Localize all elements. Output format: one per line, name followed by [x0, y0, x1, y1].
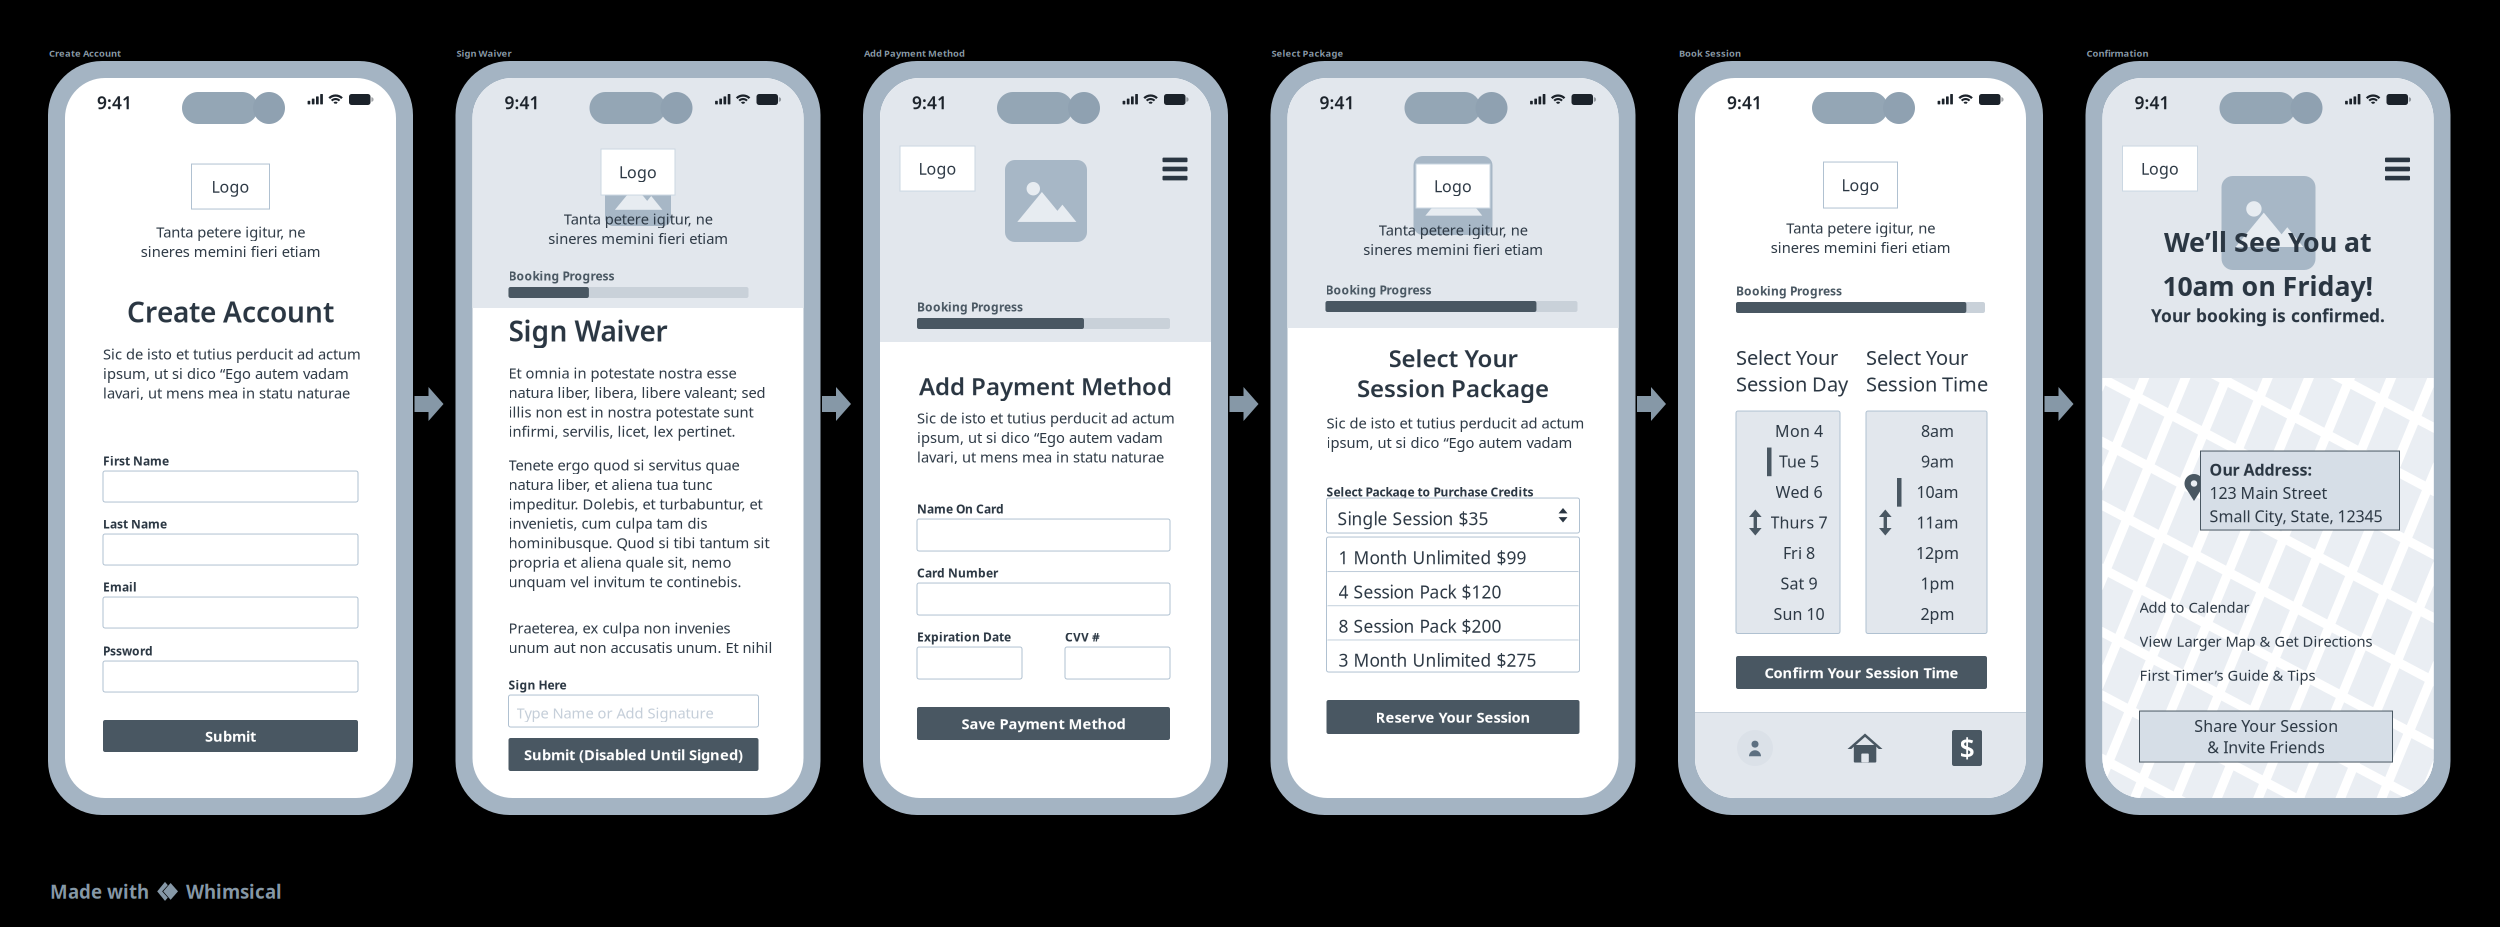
staticText: Add to Calendar [2139, 597, 2249, 617]
button[interactable]: 3 Month Unlimited $275 [1327, 641, 1578, 674]
staticText: 1 Month Unlimited $99 [1338, 546, 1526, 569]
button[interactable]: Share Your Session & Invite Friends [2139, 711, 2392, 762]
button[interactable] [917, 519, 1170, 551]
staticText: 8am [1921, 420, 1954, 441]
staticText: Booking Progress [1325, 282, 1431, 298]
staticText: 8 Session Pack $200 [1338, 614, 1501, 637]
staticText: Sat 9 [1780, 573, 1817, 594]
button[interactable]: Save Payment Method [917, 707, 1170, 740]
staticText: Logo [2141, 158, 2179, 179]
staticText: 123 Main Street [2209, 482, 2327, 503]
button[interactable]: 8 Session Pack $200 [1327, 606, 1578, 640]
staticText: Made with [50, 879, 149, 904]
staticText: 3 Month Unlimited $275 [1338, 649, 1536, 672]
button[interactable]: Menu [1154, 148, 1196, 190]
button[interactable]: Submit (Disabled Until Signed) [508, 738, 758, 771]
staticText: Single Session $35 [1337, 507, 1488, 530]
button[interactable]: Add to Calendar [2139, 596, 2401, 618]
staticText: Our Address: [2209, 459, 2311, 480]
button[interactable]: Confirm Your Session Time [1736, 656, 1987, 689]
staticText: Create Account [49, 47, 121, 59]
button[interactable]: Submit [103, 720, 358, 752]
staticText: 9:41 [912, 91, 947, 114]
staticText: 9:41 [2134, 91, 2169, 114]
staticText: Card Number [917, 565, 998, 581]
staticText: 9:41 [504, 91, 539, 114]
button[interactable]: View Larger Map & Get Directions [2139, 630, 2401, 652]
button[interactable]: Reserve Your Session [1326, 700, 1579, 734]
staticText: Sic de isto et tutius perducit ad actum … [917, 408, 1175, 466]
staticText: Thurs 7 [1770, 512, 1827, 533]
staticText: Select Package to Purchase Credits [1326, 484, 1533, 500]
staticText: Small City, State, 12345 [2209, 505, 2382, 527]
staticText: Tue 5 [1779, 451, 1819, 472]
staticText: Sign Waiver [508, 312, 667, 349]
staticText: First Name [103, 453, 169, 469]
staticText: Session Package [1357, 372, 1549, 404]
button[interactable] [1065, 647, 1170, 679]
staticText: Confirmation [2086, 47, 2148, 59]
staticText: Add Payment Method [919, 370, 1172, 402]
staticText: Fri 8 [1783, 542, 1815, 563]
staticText: Book Session [1679, 47, 1741, 59]
staticText: Sign Here [508, 677, 566, 693]
staticText: Tanta petere igitur, ne sineres memini f… [1363, 220, 1543, 259]
staticText: Logo [619, 161, 657, 183]
button[interactable]: Profile [1729, 722, 1781, 774]
staticText: 11am [1916, 512, 1958, 533]
button[interactable] [917, 647, 1022, 679]
staticText: Submit [205, 726, 256, 746]
staticText: Whimsical [186, 879, 282, 904]
button[interactable]: Payments [1941, 722, 1993, 774]
staticText: Email [103, 579, 137, 595]
staticText: Praeterea, ex culpa non invenies unum au… [508, 618, 772, 657]
staticText: Et omnia in potestate nostra esse natura… [508, 363, 765, 441]
staticText: Booking Progress [1736, 283, 1842, 299]
staticText: Tenete ergo quod si servitus quae natura… [508, 455, 769, 591]
staticText: Logo [1434, 175, 1472, 197]
button[interactable]: 1 Month Unlimited $99 [1327, 538, 1578, 571]
staticText: Select Your Session Time [1866, 344, 1988, 397]
staticText: 9am [1921, 451, 1954, 472]
button[interactable]: Single Session $35 [1326, 498, 1579, 533]
staticText: Sic de isto et tutius perducit ad actum … [1326, 413, 1584, 452]
staticText: 9:41 [1727, 91, 1762, 114]
staticText: 4 Session Pack $120 [1338, 580, 1501, 603]
staticText: Wed 6 [1775, 481, 1822, 502]
staticText: Select Your Session Day [1736, 344, 1848, 397]
staticText: Logo [1841, 174, 1879, 196]
button[interactable] [917, 583, 1170, 615]
staticText: 10am [1916, 481, 1958, 502]
staticText: Sun 10 [1773, 603, 1824, 624]
button[interactable]: Type Name or Add Signature [508, 695, 758, 727]
staticText: $ [1959, 730, 1974, 766]
staticText: Your booking is confirmed. [2151, 304, 2385, 327]
button[interactable] [103, 534, 358, 565]
button[interactable] [103, 471, 358, 502]
staticText: Pssword [103, 643, 153, 659]
button[interactable]: Menu [2376, 148, 2418, 190]
staticText: View Larger Map & Get Directions [2139, 631, 2372, 651]
staticText: Select Your [1388, 342, 1517, 374]
button[interactable] [103, 661, 358, 692]
staticText: Tanta petere igitur, ne sineres memini f… [140, 222, 320, 261]
staticText: Last Name [103, 516, 167, 532]
staticText: Add Payment Method [864, 47, 965, 59]
staticText: Confirm Your Session Time [1764, 663, 1958, 682]
staticText: Save Payment Method [961, 714, 1125, 733]
staticText: Select Package [1271, 47, 1343, 59]
staticText: Tanta petere igitur, ne sineres memini f… [1770, 218, 1950, 257]
button[interactable]: First Timer’s Guide & Tips [2139, 664, 2401, 686]
staticText: Reserve Your Session [1375, 707, 1530, 727]
button[interactable]: 4 Session Pack $120 [1327, 572, 1578, 605]
button[interactable] [103, 597, 358, 628]
staticText: 9:41 [1319, 91, 1354, 114]
staticText: Booking Progress [508, 268, 614, 284]
staticText: Submit (Disabled Until Signed) [524, 745, 743, 764]
staticText: Mon 4 [1775, 420, 1823, 441]
staticText: Logo [918, 158, 956, 179]
staticText: We’ll See You at [2164, 224, 2372, 259]
staticText: 10am on Friday! [2162, 268, 2373, 303]
button[interactable]: Home [1839, 722, 1891, 774]
staticText: Logo [211, 176, 249, 197]
